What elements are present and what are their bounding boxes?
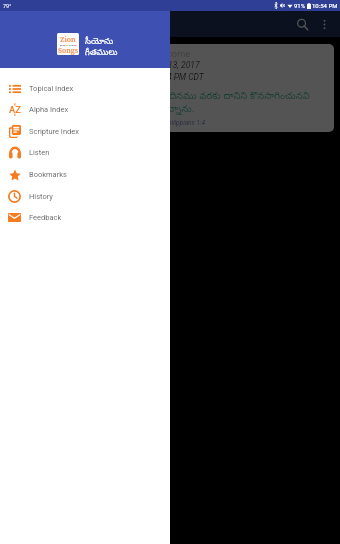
staticText: Zion bbox=[60, 35, 76, 45]
staticText: Scripture Index bbox=[29, 127, 79, 136]
button[interactable]: Listen bbox=[0, 141, 170, 163]
staticText: Topical Index bbox=[29, 84, 74, 93]
staticText: Welcome bbox=[151, 48, 191, 59]
staticText: 79° bbox=[3, 3, 12, 9]
button[interactable]: More options bbox=[314, 14, 334, 34]
staticText: గీతములు bbox=[85, 48, 118, 59]
staticText: సీయోను bbox=[85, 37, 114, 48]
staticText: History bbox=[29, 192, 53, 201]
staticText: 10:54 PM bbox=[312, 2, 338, 9]
button[interactable]: AZ bbox=[0, 98, 170, 120]
staticText: 91% bbox=[294, 2, 306, 9]
button[interactable]: Search bbox=[290, 12, 314, 36]
staticText: Bookmarks bbox=[29, 170, 67, 179]
staticText: July 13, 2017 bbox=[151, 60, 200, 70]
staticText: Philippians 1:4 bbox=[164, 119, 206, 127]
button[interactable]: History bbox=[0, 185, 170, 207]
staticText: యుచ్నాను. bbox=[151, 103, 195, 116]
button[interactable]: Feedback bbox=[0, 206, 170, 228]
staticText: 10:54 PM CDT bbox=[151, 72, 204, 82]
staticText: Alpha Index bbox=[29, 105, 69, 114]
staticText: Listen bbox=[29, 148, 50, 157]
button[interactable]: Bookmarks bbox=[0, 163, 170, 185]
button[interactable]: Scripture Index bbox=[0, 120, 170, 142]
staticText: క్రీస్తు దినము వరకు దానిని కొనసాగించునవి bbox=[151, 90, 310, 103]
staticText: Songs bbox=[58, 46, 78, 55]
button[interactable]: Topical Index bbox=[0, 77, 170, 99]
staticText: Feedback bbox=[29, 213, 62, 222]
staticText: AZ bbox=[9, 104, 21, 115]
